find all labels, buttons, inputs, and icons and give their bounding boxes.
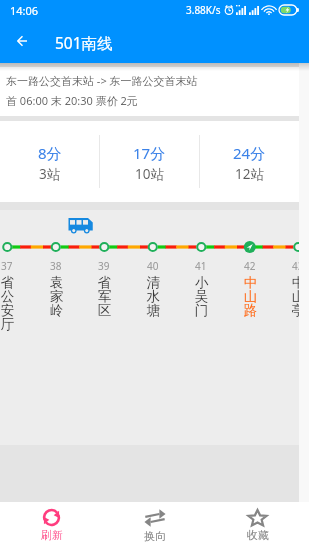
button[interactable]: Back xyxy=(8,27,36,55)
button[interactable]: 24分 xyxy=(200,121,299,202)
button[interactable]: 39 xyxy=(92,259,116,319)
staticText: 12站 xyxy=(235,165,264,183)
staticText: 首 06:00 末 20:30 票价 2元 xyxy=(6,93,138,108)
staticText: 东一路公交首末站 -> 东一路公交首末站 xyxy=(6,73,198,88)
button[interactable]: 8分 xyxy=(0,121,99,202)
button[interactable]: 刷新 xyxy=(0,502,103,550)
staticText: 24分 xyxy=(233,143,266,163)
staticText: 中山亭 xyxy=(291,274,306,319)
staticText: 清水塘 xyxy=(146,274,161,319)
staticText: 10站 xyxy=(135,165,164,183)
button[interactable]: 43 xyxy=(286,259,309,319)
staticText: 中山路 xyxy=(243,274,258,319)
staticText: 14:06 xyxy=(10,3,39,18)
staticText: 37 xyxy=(1,259,13,273)
button[interactable]: 37 xyxy=(0,259,19,333)
staticText: 袁家岭 xyxy=(49,274,64,319)
staticText: 省公安厅 xyxy=(0,274,15,333)
staticText: 17分 xyxy=(133,143,166,163)
button[interactable]: 41 xyxy=(189,259,213,319)
staticText: 8分 xyxy=(38,143,62,163)
staticText: 省军区 xyxy=(97,274,112,319)
staticText: 43 xyxy=(292,259,304,273)
button[interactable]: 40 xyxy=(141,259,165,319)
staticText: 40 xyxy=(147,259,159,273)
staticText: 3.88K/s xyxy=(186,3,221,17)
button[interactable]: 17分 xyxy=(100,121,199,202)
button[interactable]: 收藏 xyxy=(206,502,309,550)
staticText: 39 xyxy=(98,259,110,273)
button[interactable]: 换向 xyxy=(103,502,206,550)
staticText: 小吴门 xyxy=(194,274,209,319)
staticText: 换向 xyxy=(144,529,166,543)
staticText: 3站 xyxy=(39,165,61,183)
staticText: 501南线 xyxy=(55,32,113,53)
button[interactable]: 42 xyxy=(238,259,262,319)
staticText: 刷新 xyxy=(41,528,63,542)
staticText: 42 xyxy=(244,259,256,273)
staticText: 41 xyxy=(195,259,207,273)
staticText: 收藏 xyxy=(247,528,269,542)
staticText: 38 xyxy=(50,259,62,273)
button[interactable]: 38 xyxy=(44,259,68,319)
